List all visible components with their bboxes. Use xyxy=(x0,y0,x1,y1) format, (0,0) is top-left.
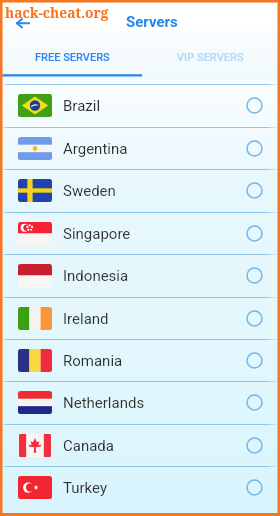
button[interactable]: Brazil xyxy=(0,84,280,126)
staticText: VIP SERVERS xyxy=(177,51,244,64)
staticText: Turkey xyxy=(63,479,108,497)
button[interactable]: Sweden xyxy=(0,169,280,211)
staticText: Netherlands xyxy=(63,394,145,412)
button[interactable]: Indonesia xyxy=(0,254,280,296)
staticText: FREE SERVERS xyxy=(35,51,110,64)
staticText: Indonesia xyxy=(63,267,129,285)
staticText: Romania xyxy=(63,352,123,370)
button[interactable]: Netherlands xyxy=(0,381,280,423)
staticText: hack-cheat.org xyxy=(5,3,109,22)
button[interactable]: Canada xyxy=(0,424,280,466)
staticText: Argentina xyxy=(63,140,128,158)
staticText: Ireland xyxy=(63,310,109,328)
button[interactable]: VIP SERVERS xyxy=(140,44,280,78)
staticText: Brazil xyxy=(63,97,101,115)
button[interactable]: Singapore xyxy=(0,212,280,254)
button[interactable]: Argentina xyxy=(0,127,280,169)
staticText: Singapore xyxy=(63,225,131,243)
button[interactable]: Back xyxy=(10,12,36,34)
button[interactable]: Romania xyxy=(0,339,280,381)
staticText: Servers xyxy=(126,13,178,31)
staticText: Canada xyxy=(63,437,114,455)
button[interactable]: FREE SERVERS xyxy=(0,44,140,78)
button[interactable]: Ireland xyxy=(0,297,280,339)
staticText: Sweden xyxy=(63,182,116,200)
button[interactable]: Turkey xyxy=(0,466,280,508)
